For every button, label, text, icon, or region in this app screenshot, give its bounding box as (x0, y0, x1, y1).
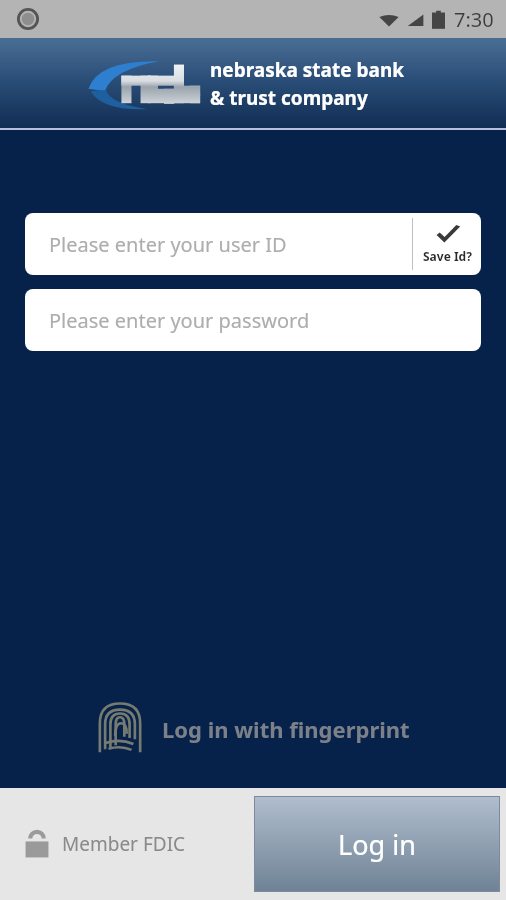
button[interactable]: Please enter your password (25, 289, 481, 351)
button[interactable]: Member FDIC (24, 828, 186, 860)
staticText: Please enter your password (49, 307, 310, 334)
button[interactable]: Save Id (413, 213, 481, 275)
staticText: nebraska state bank (210, 57, 405, 83)
staticText: & trust company (210, 85, 368, 111)
staticText: Log in (338, 826, 416, 863)
staticText: Member FDIC (62, 831, 186, 857)
button[interactable]: Log in with fingerprint (0, 691, 506, 767)
staticText: Please enter your user ID (49, 231, 287, 258)
staticText: 7:30 (454, 6, 494, 33)
staticText: Log in with fingerprint (162, 714, 410, 744)
button[interactable]: Please enter your user ID (25, 213, 481, 275)
staticText: Save Id? (423, 248, 472, 264)
button[interactable]: Log in (254, 796, 500, 892)
